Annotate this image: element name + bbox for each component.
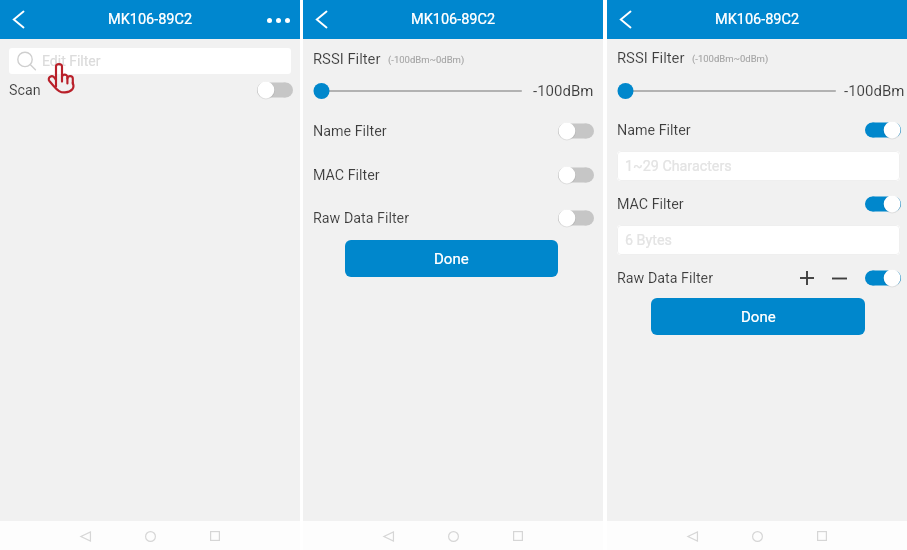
staticText: (-100dBm~0dBm) bbox=[692, 53, 769, 64]
button[interactable]: Home bbox=[746, 525, 768, 547]
button[interactable]: Toggle off bbox=[558, 166, 594, 184]
staticText: Name Filter bbox=[313, 123, 387, 140]
button[interactable]: Done bbox=[651, 298, 865, 335]
staticText: RSSI Filter bbox=[313, 50, 381, 67]
button[interactable]: Back bbox=[377, 525, 399, 547]
staticText: MK106-89C2 bbox=[715, 11, 800, 28]
button[interactable]: Toggle on bbox=[865, 195, 901, 213]
staticText: Raw Data Filter bbox=[617, 270, 713, 287]
button[interactable]: 1~29 Characters bbox=[617, 151, 900, 181]
button[interactable]: Back bbox=[74, 525, 96, 547]
button[interactable]: Toggle off bbox=[257, 81, 293, 99]
staticText: Done bbox=[434, 250, 469, 268]
staticText: -100dBm bbox=[533, 82, 594, 100]
staticText: 6 Bytes bbox=[625, 232, 672, 249]
staticText: MK106-89C2 bbox=[411, 11, 496, 28]
button[interactable]: Home bbox=[139, 525, 161, 547]
button[interactable]: Recent apps bbox=[507, 525, 529, 547]
button[interactable]: Done bbox=[345, 240, 558, 277]
staticText: MAC Filter bbox=[617, 196, 684, 213]
staticText: Edit Filter bbox=[42, 53, 101, 69]
staticText: Done bbox=[741, 308, 776, 326]
staticText: Name Filter bbox=[617, 122, 691, 139]
button[interactable]: Back bbox=[2, 0, 35, 39]
button[interactable]: Recent apps bbox=[204, 525, 226, 547]
staticText: 1~29 Characters bbox=[625, 158, 732, 175]
button[interactable]: Back bbox=[609, 0, 642, 39]
button[interactable]: Back bbox=[305, 0, 338, 39]
button[interactable]: 6 Bytes bbox=[617, 225, 900, 255]
button[interactable]: Home bbox=[442, 525, 464, 547]
staticText: RSSI Filter bbox=[617, 49, 685, 66]
staticText: MK106-89C2 bbox=[108, 11, 193, 28]
staticText: Scan bbox=[9, 82, 41, 99]
staticText: MAC Filter bbox=[313, 167, 380, 184]
button[interactable]: Edit Filter bbox=[9, 48, 291, 74]
button[interactable]: Toggle off bbox=[558, 122, 594, 140]
button[interactable]: Recent apps bbox=[811, 525, 833, 547]
button[interactable]: Back bbox=[681, 525, 703, 547]
button[interactable]: Remove bbox=[829, 268, 849, 288]
staticText: -100dBm bbox=[844, 82, 905, 100]
staticText: Raw Data Filter bbox=[313, 210, 409, 227]
button[interactable]: Toggle on bbox=[865, 269, 901, 287]
button[interactable]: More options bbox=[262, 4, 294, 36]
button[interactable]: Toggle on bbox=[865, 121, 901, 139]
button[interactable]: Toggle off bbox=[558, 209, 594, 227]
staticText: (-100dBm~0dBm) bbox=[388, 54, 465, 65]
button[interactable]: Add bbox=[797, 268, 817, 288]
